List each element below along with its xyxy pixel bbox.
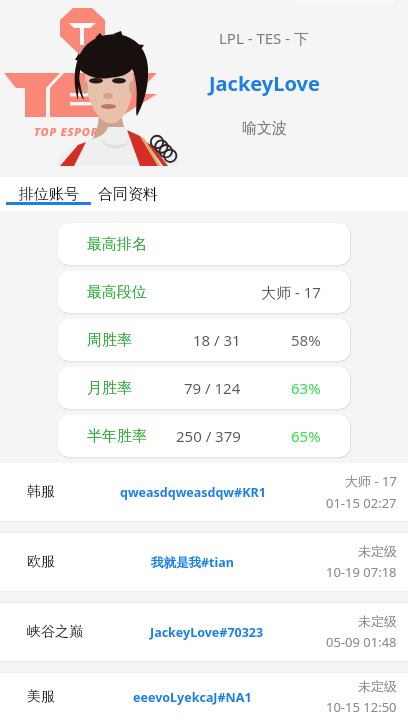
staticText: 排位账号 xyxy=(19,185,79,204)
staticText: 未定级 xyxy=(358,543,397,559)
staticText: 大师 - 17 xyxy=(261,282,321,302)
staticText: 合同资料 xyxy=(98,185,158,204)
staticText: JackeyLove#70323 xyxy=(150,624,264,641)
button[interactable]: 最高排名 xyxy=(58,223,350,265)
button[interactable]: 半年胜率 xyxy=(58,415,350,457)
staticText: 我就是我#tian xyxy=(151,554,234,571)
staticText: JackeyLove xyxy=(209,70,320,97)
staticText: 05-09 01:48 xyxy=(326,633,397,651)
button[interactable]: 排位账号 xyxy=(0,177,97,211)
staticText: eeevoLyekcaJ#NA1 xyxy=(133,689,252,706)
staticText: 半年胜率 xyxy=(87,427,147,446)
button[interactable]: 美服 xyxy=(0,673,408,721)
staticText: 250 / 379 xyxy=(176,426,241,446)
button[interactable]: 最高段位 xyxy=(58,271,350,313)
staticText: 美服 xyxy=(27,688,55,706)
staticText: 欧服 xyxy=(27,553,55,571)
button[interactable]: 欧服 xyxy=(0,533,408,591)
staticText: 58% xyxy=(291,330,321,350)
staticText: 79 / 124 xyxy=(184,378,241,398)
button[interactable]: 周胜率 xyxy=(58,319,350,361)
staticText: 63% xyxy=(291,378,321,398)
staticText: 大师 - 17 xyxy=(345,472,397,490)
staticText: qweasdqweasdqw#KR1 xyxy=(120,484,266,501)
button[interactable]: 月胜率 xyxy=(58,367,350,409)
staticText: 18 / 31 xyxy=(193,330,241,350)
staticText: 周胜率 xyxy=(87,331,132,350)
staticText: TOP ESPORTS xyxy=(34,124,112,139)
staticText: 未定级 xyxy=(358,678,397,694)
staticText: LPL - TES - 下 xyxy=(219,28,309,48)
staticText: 喻文波 xyxy=(242,119,287,138)
staticText: 未定级 xyxy=(358,613,397,629)
staticText: 韩服 xyxy=(27,483,55,501)
staticText: 65% xyxy=(291,426,321,446)
button[interactable]: 合同资料 xyxy=(97,177,159,211)
staticText: 10-15 12:50 xyxy=(326,698,397,716)
button[interactable]: 韩服 xyxy=(0,463,408,521)
staticText: 01-15 02:27 xyxy=(326,494,397,512)
staticText: 最高段位 xyxy=(87,283,147,302)
staticText: 10-19 07:18 xyxy=(326,563,397,581)
button[interactable]: 峡谷之巅 xyxy=(0,603,408,661)
staticText: 月胜率 xyxy=(87,379,132,398)
staticText: 峡谷之巅 xyxy=(27,623,83,641)
staticText: 最高排名 xyxy=(87,235,147,254)
